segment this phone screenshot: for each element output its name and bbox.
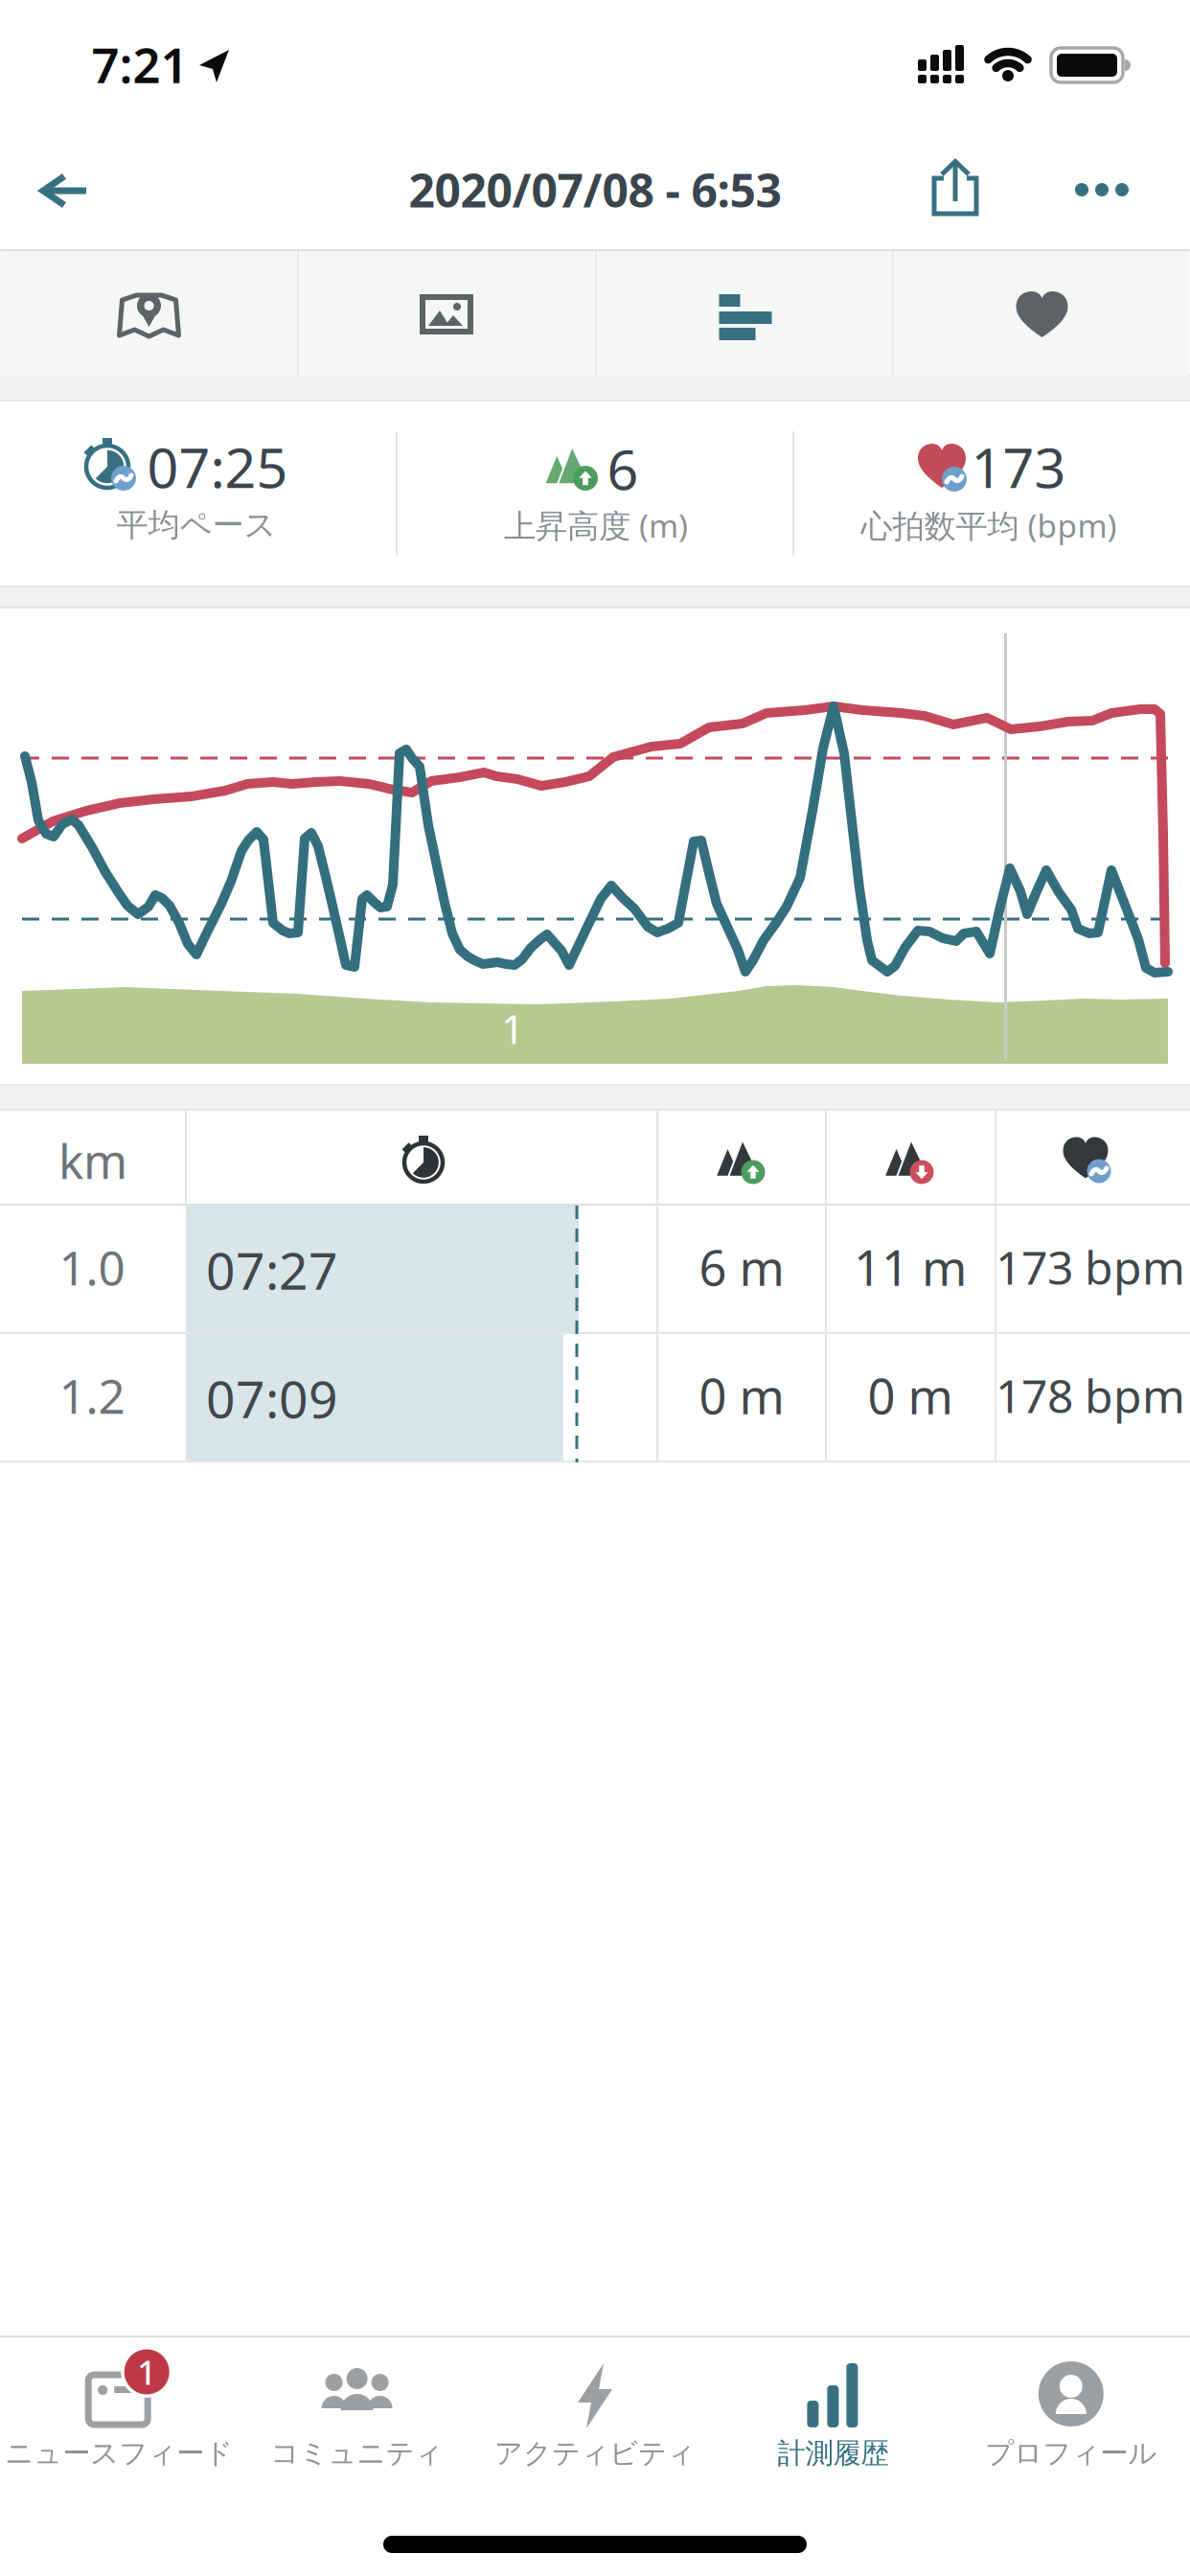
- staticText: 11 m: [854, 1235, 967, 1299]
- staticText: 6: [607, 432, 639, 505]
- staticText: 1: [501, 1001, 524, 1056]
- button[interactable]: Map: [0, 251, 297, 377]
- staticText: プロフィール: [985, 2436, 1157, 2471]
- button[interactable]: ニュースフィード: [0, 2336, 238, 2471]
- button[interactable]: Share: [932, 159, 978, 217]
- staticText: ニュースフィード: [5, 2436, 233, 2471]
- staticText: 173: [971, 430, 1066, 503]
- staticText: 07:09: [206, 1364, 338, 1432]
- button[interactable]: 計測履歴: [714, 2336, 952, 2471]
- staticText: 6 m: [699, 1235, 784, 1299]
- staticText: 07:27: [206, 1236, 338, 1304]
- button[interactable]: Splits: [595, 251, 892, 377]
- staticText: 2020/07/08 - 6:53: [409, 159, 781, 220]
- staticText: コミュニティ: [271, 2436, 443, 2471]
- button[interactable]: プロフィール: [952, 2336, 1190, 2471]
- staticText: 1: [137, 2350, 156, 2394]
- button[interactable]: Photos: [298, 251, 595, 377]
- staticText: 178 bpm: [995, 1365, 1185, 1426]
- staticText: 計測履歴: [777, 2436, 889, 2471]
- staticText: 上昇高度 (m): [504, 504, 688, 546]
- staticText: 1.2: [59, 1364, 125, 1427]
- staticText: 0 m: [868, 1363, 953, 1428]
- staticText: 7:21: [92, 32, 188, 97]
- staticText: 平均ペース: [116, 506, 276, 545]
- button[interactable]: コミュニティ: [238, 2336, 476, 2471]
- button[interactable]: More: [1075, 183, 1129, 196]
- staticText: 0 m: [699, 1363, 784, 1428]
- staticText: 心拍数平均 (bpm): [861, 504, 1117, 546]
- button[interactable]: アクティビティ: [476, 2336, 714, 2471]
- staticText: km: [58, 1129, 127, 1192]
- staticText: 1.0: [59, 1235, 125, 1298]
- staticText: 173 bpm: [995, 1236, 1185, 1297]
- staticText: 07:25: [147, 430, 288, 503]
- button[interactable]: Heart rate: [893, 251, 1190, 377]
- staticText: アクティビティ: [494, 2436, 696, 2471]
- button[interactable]: Back: [41, 159, 89, 222]
